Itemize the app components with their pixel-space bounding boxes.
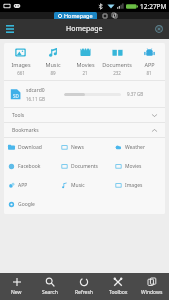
staticText: Windows: [141, 289, 163, 296]
staticText: Download: [18, 144, 42, 151]
staticText: 661: [17, 70, 25, 76]
staticText: Google: [18, 201, 35, 208]
button[interactable]: Download: [4, 138, 57, 157]
staticText: Weather: [125, 144, 145, 151]
staticText: Homepage: [64, 12, 93, 19]
staticText: APP: [18, 182, 28, 189]
staticText: Bookmarks: [12, 127, 39, 134]
button[interactable]: Search: [33, 273, 67, 300]
button[interactable]: Close: [149, 19, 169, 39]
button[interactable]: Google: [4, 195, 57, 214]
button[interactable]: Documents: [57, 157, 111, 176]
staticText: SD: [13, 93, 19, 99]
staticText: Music: [45, 61, 61, 68]
staticText: 9.37 GB: [127, 91, 144, 97]
staticText: Documents: [71, 163, 98, 170]
staticText: Movies: [125, 163, 142, 170]
staticText: Refresh: [75, 289, 93, 296]
staticText: Images: [11, 61, 31, 68]
staticText: 16.11 GB: [26, 96, 45, 102]
staticText: New: [11, 289, 22, 296]
button[interactable]: Homepage: [54, 12, 97, 19]
button[interactable]: Windows: [135, 273, 169, 300]
button[interactable]: Movies: [69, 43, 101, 80]
staticText: Toolbox: [109, 289, 128, 296]
staticText: Movies: [76, 61, 95, 68]
button[interactable]: Images: [4, 43, 37, 80]
staticText: News: [71, 144, 84, 151]
button[interactable]: Refresh: [67, 273, 101, 300]
staticText: Images: [125, 182, 143, 189]
staticText: APP: [144, 61, 155, 68]
staticText: Search: [42, 289, 58, 296]
button[interactable]: Bookmarks: [4, 123, 165, 137]
staticText: Homepage: [66, 24, 103, 34]
button[interactable]: Music: [57, 176, 111, 195]
button[interactable]: Facebook: [4, 157, 57, 176]
button[interactable]: Documents: [101, 43, 133, 80]
button[interactable]: Weather: [111, 138, 165, 157]
button[interactable]: Music: [37, 43, 69, 80]
button[interactable]: News: [57, 138, 111, 157]
staticText: 89: [50, 70, 56, 76]
button[interactable]: Movies: [111, 157, 165, 176]
button[interactable]: New: [0, 273, 33, 300]
button[interactable]: APP: [133, 43, 165, 80]
staticText: 12:27PM: [140, 2, 167, 11]
button[interactable]: Tools: [4, 108, 165, 122]
button[interactable]: Tab: [101, 12, 108, 19]
staticText: Tools: [12, 112, 25, 119]
staticText: Facebook: [18, 163, 41, 170]
button[interactable]: Menu: [0, 19, 19, 39]
staticText: Music: [71, 182, 85, 189]
button[interactable]: Toolbox: [101, 273, 135, 300]
button[interactable]: APP: [4, 176, 57, 195]
staticText: 21: [82, 70, 88, 76]
staticText: 232: [113, 70, 121, 76]
staticText: Documents: [102, 61, 132, 68]
button[interactable]: Images: [111, 176, 165, 195]
button[interactable]: New tab: [111, 12, 118, 19]
staticText: sdcard0: [26, 87, 45, 94]
button[interactable]: SD: [4, 81, 165, 107]
staticText: 81: [146, 70, 152, 76]
